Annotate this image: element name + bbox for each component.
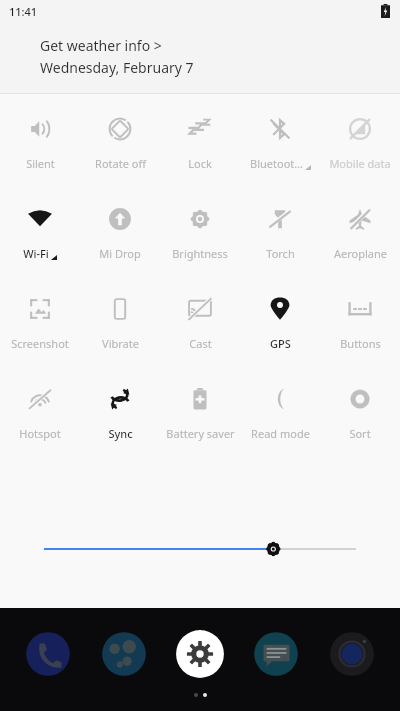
staticText: Wednesday, February 7 [40, 58, 194, 77]
button[interactable]: Settings [172, 626, 228, 682]
staticText: Mobile data [329, 156, 391, 171]
button[interactable]: Read mode [240, 372, 320, 462]
staticText: Silent [26, 156, 55, 171]
button[interactable]: Bluetoot… [240, 102, 320, 192]
button[interactable]: Buttons [320, 282, 400, 372]
button[interactable]: Get weather info > [0, 22, 400, 93]
button[interactable]: Silent [0, 102, 80, 192]
staticText: Bluetoot… [250, 156, 303, 171]
staticText: Brightness [172, 246, 228, 261]
button[interactable]: GPS [240, 282, 320, 372]
button[interactable]: Browser [96, 626, 152, 682]
button[interactable]: Sort [320, 372, 400, 462]
staticText: GPS [270, 336, 291, 351]
button[interactable]: Cast [160, 282, 240, 372]
button[interactable]: Hotspot [0, 372, 80, 462]
staticText: Battery saver [166, 426, 235, 441]
button[interactable]: Phone [20, 626, 76, 682]
button[interactable]: Lock [160, 102, 240, 192]
button[interactable]: Messages [248, 626, 304, 682]
staticText: Get weather info > [40, 36, 162, 55]
staticText: Screenshot [11, 336, 69, 351]
staticText: Vibrate [102, 336, 139, 351]
staticText: Rotate off [95, 156, 146, 171]
button[interactable]: Sync [80, 372, 160, 462]
button[interactable]: Wi-Fi [0, 192, 80, 282]
button[interactable]: Battery saver [160, 372, 240, 462]
button[interactable]: Mi Drop [80, 192, 160, 282]
button[interactable]: Vibrate [80, 282, 160, 372]
button[interactable]: Brightness [160, 192, 240, 282]
button[interactable]: Rotate off [80, 102, 160, 192]
staticText: Torch [266, 246, 295, 261]
button[interactable]: Torch [240, 192, 320, 282]
staticText: 11:41 [9, 4, 38, 19]
button[interactable]: Mobile data [320, 102, 400, 192]
button[interactable]: Brightness slider [0, 528, 400, 570]
button[interactable]: Screenshot [0, 282, 80, 372]
button[interactable]: Camera [324, 626, 380, 682]
staticText: Cast [189, 336, 212, 351]
staticText: Mi Drop [99, 246, 141, 261]
staticText: Aeroplane [334, 246, 387, 261]
staticText: Lock [188, 156, 212, 171]
staticText: Wi-Fi [23, 246, 49, 261]
staticText: Sync [108, 426, 133, 441]
button[interactable]: Aeroplane [320, 192, 400, 282]
staticText: Sort [349, 426, 371, 441]
staticText: Buttons [340, 336, 381, 351]
staticText: Hotspot [19, 426, 61, 441]
staticText: Read mode [251, 426, 310, 441]
